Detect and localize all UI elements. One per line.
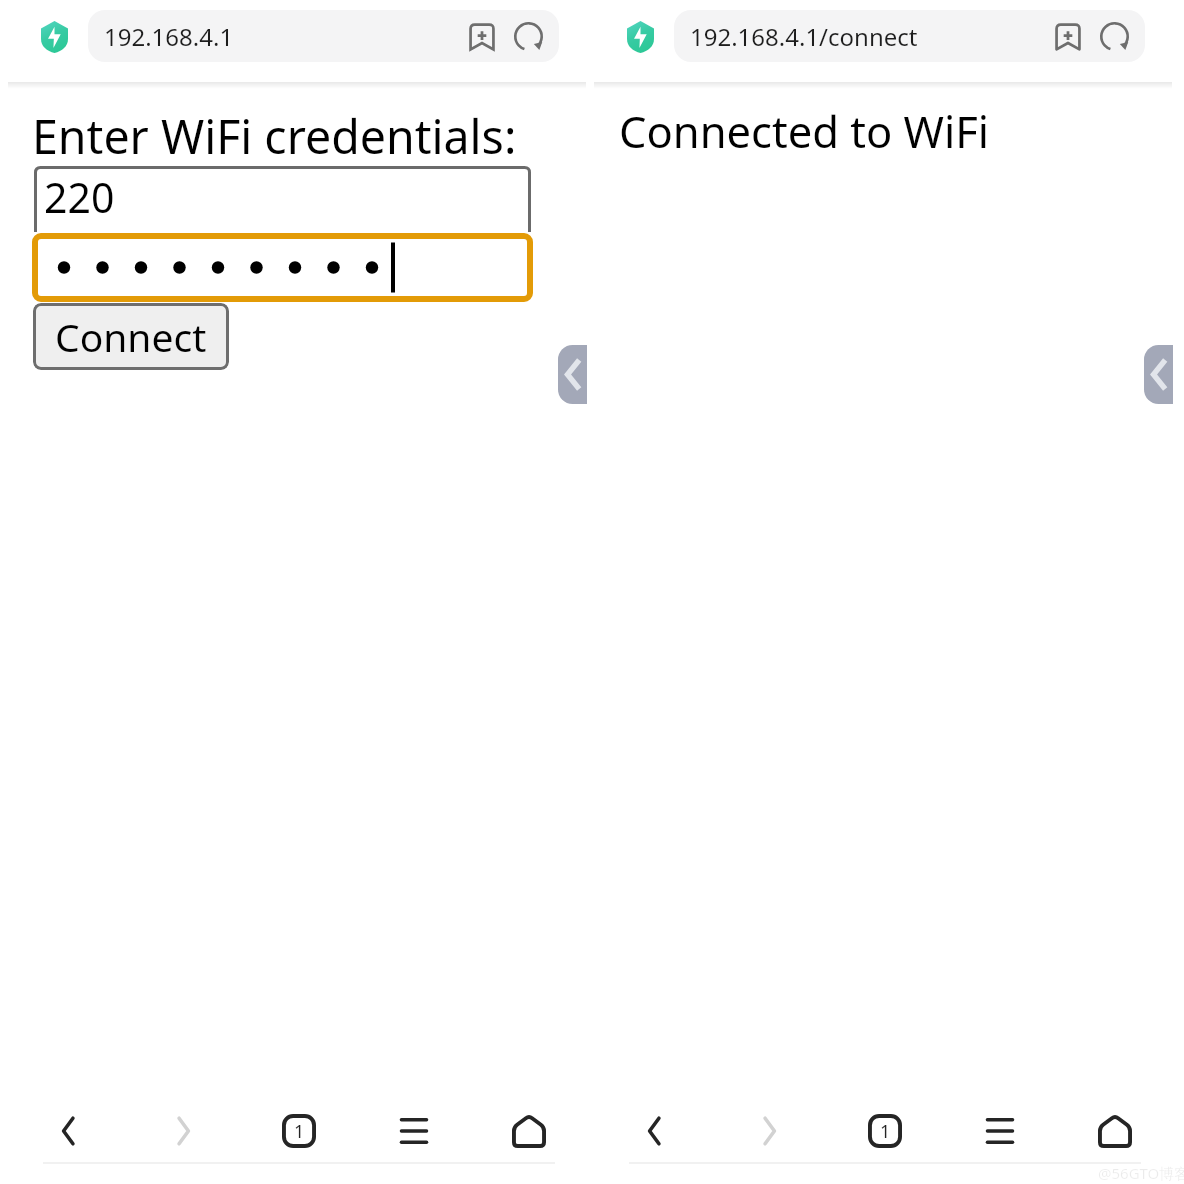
button[interactable]: Tabs <box>241 1099 356 1163</box>
staticText: @56GTO博客 CSDN <box>1098 1163 1184 1183</box>
button[interactable]: 192.168.4.1/connect <box>674 10 1145 62</box>
button[interactable]: Forward <box>126 1099 241 1163</box>
button[interactable]: Back gesture handle <box>558 345 587 404</box>
staticText: 220 <box>44 169 115 225</box>
staticText: 192.168.4.1 <box>104 20 234 53</box>
staticText: 192.168.4.1/connect <box>690 20 918 53</box>
button[interactable]: Reload <box>1097 19 1131 53</box>
button[interactable]: Home <box>1057 1099 1172 1163</box>
staticText: 1 <box>294 1119 305 1144</box>
staticText: Connected to WiFi <box>619 101 990 160</box>
button[interactable]: Add bookmark <box>465 19 499 53</box>
button[interactable]: 192.168.4.1 <box>88 10 559 62</box>
button[interactable]: Forward <box>712 1099 827 1163</box>
button[interactable]: Connect <box>33 303 229 370</box>
button[interactable]: 220 <box>34 166 531 232</box>
button[interactable]: Back <box>10 1099 126 1163</box>
button[interactable]: Back <box>596 1099 712 1163</box>
button[interactable] <box>32 233 533 302</box>
button[interactable]: Menu <box>356 1099 471 1163</box>
button[interactable]: Back gesture handle <box>1144 345 1173 404</box>
button[interactable]: Menu <box>942 1099 1057 1163</box>
staticText: Enter WiFi credentials: <box>32 104 517 167</box>
button[interactable]: Tabs <box>827 1099 942 1163</box>
staticText: 1 <box>880 1119 891 1144</box>
button[interactable]: Home <box>471 1099 586 1163</box>
button[interactable]: Reload <box>511 19 545 53</box>
staticText: Connect <box>55 310 207 363</box>
button[interactable]: Add bookmark <box>1051 19 1085 53</box>
